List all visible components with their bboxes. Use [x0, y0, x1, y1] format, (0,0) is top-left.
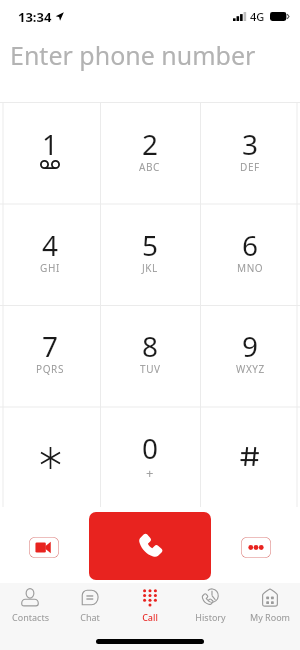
staticText: PQRS — [36, 362, 64, 376]
button[interactable]: 9 — [200, 304, 300, 406]
staticText: 1 — [42, 125, 59, 163]
button[interactable]: 1 — [0, 102, 100, 203]
staticText: 4 — [42, 226, 59, 264]
button[interactable] — [0, 406, 100, 508]
button[interactable] — [200, 406, 300, 508]
staticText: WXYZ — [236, 362, 265, 376]
staticText: GHI — [40, 261, 60, 275]
staticText: 0 — [142, 429, 159, 467]
staticText: 7 — [42, 327, 59, 365]
button[interactable]: 4 — [0, 203, 100, 304]
button[interactable]: Contacts — [0, 583, 60, 628]
button[interactable]: 5 — [100, 203, 200, 304]
button[interactable]: 0 — [100, 406, 200, 508]
button[interactable]: Video call — [29, 537, 59, 558]
staticText: 3 — [242, 125, 259, 163]
button[interactable]: 3 — [200, 102, 300, 203]
staticText: ABC — [139, 160, 161, 174]
staticText: TUV — [140, 362, 161, 376]
staticText: 5 — [142, 226, 159, 264]
staticText: Enter phone number — [10, 38, 256, 72]
staticText: + — [146, 464, 154, 482]
staticText: Call — [142, 611, 158, 623]
staticText: 4G — [250, 9, 265, 24]
button[interactable]: Call — [89, 512, 211, 580]
staticText: DEF — [240, 160, 260, 174]
button[interactable]: More options — [241, 537, 271, 558]
staticText: Contacts — [12, 611, 49, 623]
staticText: JKL — [142, 261, 158, 275]
staticText: 8 — [142, 327, 159, 365]
button[interactable]: 6 — [200, 203, 300, 304]
staticText: History — [195, 611, 226, 623]
staticText: 6 — [242, 226, 259, 264]
button[interactable]: Call — [120, 583, 180, 628]
button[interactable]: History — [180, 583, 240, 628]
staticText: My Room — [250, 611, 290, 623]
button[interactable]: Chat — [60, 583, 120, 628]
button[interactable]: 2 — [100, 102, 200, 203]
staticText: 9 — [242, 327, 259, 365]
button[interactable]: 8 — [100, 304, 200, 406]
staticText: MNO — [237, 261, 264, 275]
button[interactable]: 7 — [0, 304, 100, 406]
button[interactable]: My Room — [240, 583, 300, 628]
staticText: Chat — [80, 611, 100, 623]
staticText: 2 — [142, 125, 159, 163]
staticText: 13:34 — [18, 8, 52, 26]
